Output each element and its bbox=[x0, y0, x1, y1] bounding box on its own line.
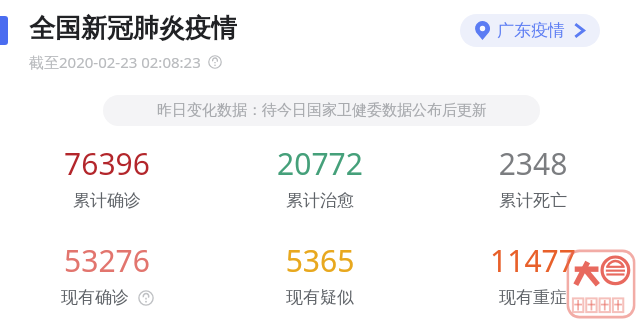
staticText: 现有重症 bbox=[433, 287, 633, 308]
button[interactable]: 广东疫情 bbox=[460, 14, 600, 47]
staticText: 累计治愈 bbox=[220, 190, 420, 211]
staticText: 20772 bbox=[220, 143, 420, 184]
staticText: 现有疑似 bbox=[220, 287, 420, 308]
staticText: 昨日变化数据：待今日国家卫健委数据公布后更新 bbox=[157, 101, 487, 120]
staticText: 全国新冠肺炎疫情 bbox=[29, 12, 237, 45]
other: 说明 bbox=[208, 55, 222, 69]
button[interactable]: 76396 bbox=[7, 143, 207, 211]
staticText: 11477 bbox=[433, 240, 633, 281]
button[interactable]: 53276 bbox=[7, 240, 207, 308]
staticText: 累计确诊 bbox=[7, 190, 207, 211]
other: 现有确诊说明 bbox=[138, 290, 154, 306]
staticText: 截至2020-02-23 02:08:23 bbox=[29, 52, 201, 72]
staticText: 广东疫情 bbox=[497, 20, 565, 41]
staticText: 2348 bbox=[433, 143, 633, 184]
staticText: 53276 bbox=[7, 240, 207, 281]
button[interactable]: 5365 bbox=[220, 240, 420, 308]
button[interactable]: 2348 bbox=[433, 143, 633, 211]
button[interactable]: 11477 bbox=[433, 240, 633, 308]
staticText: 累计死亡 bbox=[433, 190, 633, 211]
staticText: 现有确诊 bbox=[61, 287, 129, 308]
staticText: 76396 bbox=[7, 143, 207, 184]
button[interactable]: 昨日变化数据：待今日国家卫健委数据公布后更新 bbox=[103, 95, 540, 126]
button[interactable]: 20772 bbox=[220, 143, 420, 211]
staticText: 5365 bbox=[220, 240, 420, 281]
